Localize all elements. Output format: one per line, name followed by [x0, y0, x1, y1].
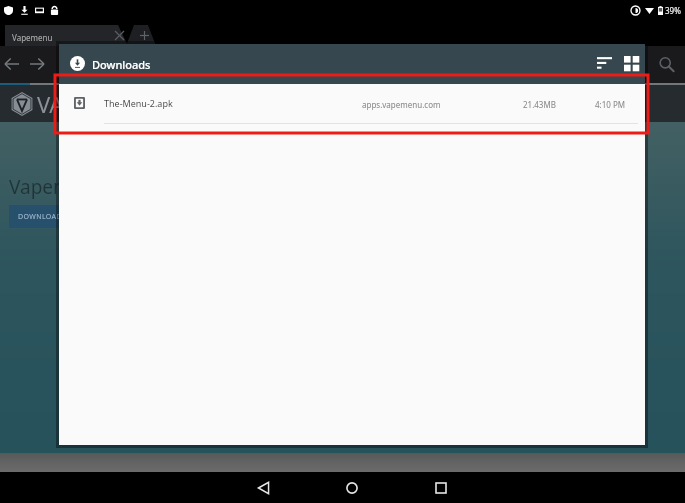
staticText: Vapemenu [9, 174, 106, 200]
staticText: Vapemenu [12, 32, 53, 43]
button[interactable]: Forward [23, 50, 51, 78]
button[interactable]: DOWNLOAD FREE [9, 205, 113, 228]
staticText: VAPEMENU [37, 89, 154, 119]
staticText: DOWNLOAD FREE [18, 212, 82, 222]
button[interactable]: Back [0, 50, 26, 78]
staticText: 39% [665, 5, 681, 16]
button[interactable]: The-Menu-2.apk [59, 84, 645, 122]
staticText: The-Menu-2.apk [104, 97, 173, 109]
staticText: 4:10 PM [595, 99, 626, 110]
button[interactable]: Sort [591, 50, 617, 76]
staticText: apps.vapemenu.com [362, 99, 441, 110]
staticText: Downloads [92, 57, 151, 72]
button[interactable]: Home [330, 472, 374, 503]
button[interactable]: New tab [137, 28, 151, 42]
button[interactable]: Search [653, 51, 681, 79]
button[interactable]: Close tab [112, 28, 126, 42]
button[interactable]: Vapemenu [5, 20, 123, 46]
button[interactable]: Grid view [618, 50, 644, 76]
button[interactable]: Back [241, 472, 285, 503]
staticText: 21.43MB [523, 99, 556, 110]
button[interactable]: Recent apps [419, 472, 463, 503]
